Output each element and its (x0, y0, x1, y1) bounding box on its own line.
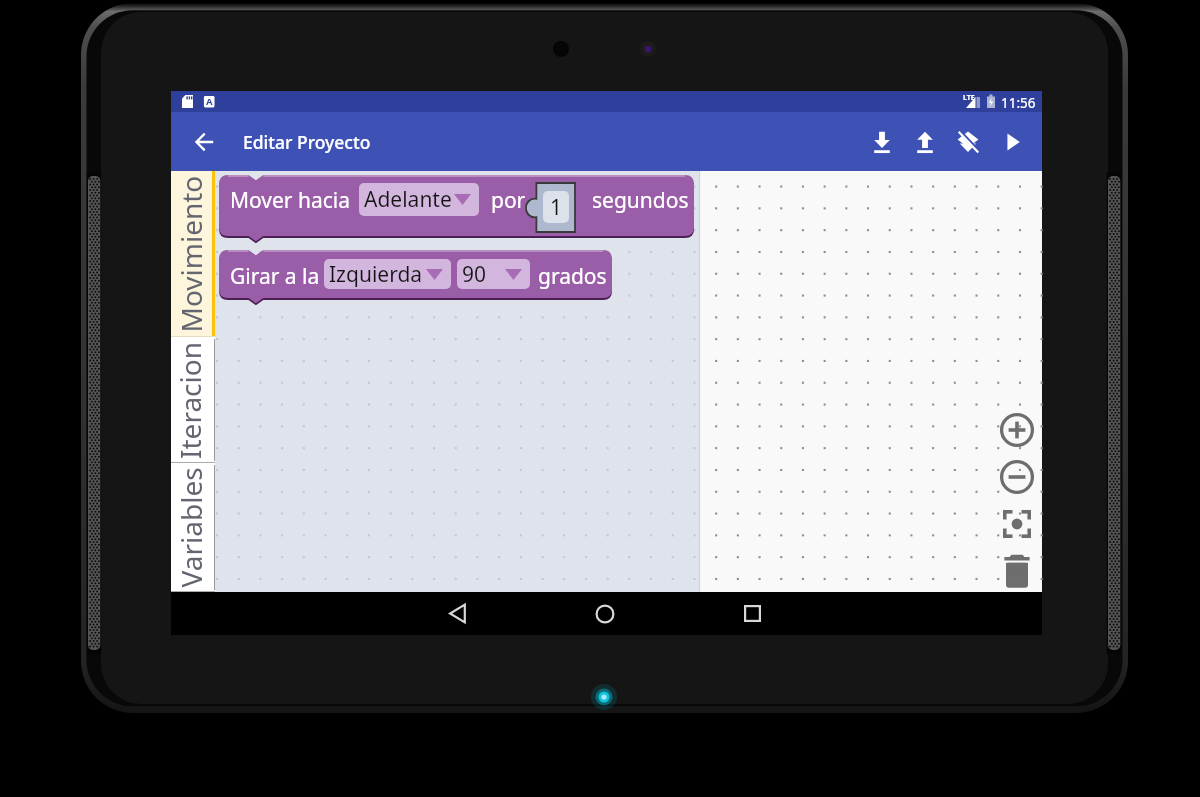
staticText: 90 (462, 260, 487, 289)
button[interactable]: Zoom out (994, 454, 1040, 500)
button[interactable]: Movimiento (171, 171, 215, 337)
staticText: Izquierda (329, 260, 423, 289)
staticText: Iteracion (171, 341, 209, 459)
staticText: Editar Proyecto (243, 130, 371, 154)
staticText: A (206, 95, 213, 108)
staticText: Girar a la (230, 262, 320, 291)
button[interactable]: 1 (543, 191, 569, 223)
button[interactable]: Back (413, 592, 503, 635)
button[interactable]: Recents (707, 592, 797, 635)
staticText: por (491, 186, 526, 215)
staticText: Mover hacia (230, 186, 351, 215)
staticText: Adelante (364, 185, 452, 214)
button[interactable]: Mover hacia (219, 175, 694, 236)
button[interactable]: Iteracion (171, 337, 215, 463)
staticText: grados (538, 262, 607, 291)
button[interactable]: Zoom in (994, 407, 1040, 453)
button[interactable]: Delete (994, 549, 1040, 595)
staticText: 11:56 (1001, 94, 1036, 112)
staticText: Variables (171, 466, 209, 587)
button[interactable]: Run (990, 112, 1034, 171)
button[interactable]: Variables (171, 463, 215, 592)
staticText: Movimiento (171, 175, 209, 332)
staticText: segundos (592, 186, 689, 215)
button[interactable]: Back (175, 112, 233, 171)
button[interactable]: Upload (903, 112, 947, 171)
staticText: 1 (550, 193, 563, 222)
button[interactable]: Toggle layers (946, 112, 990, 171)
button[interactable]: Adelante (359, 183, 479, 216)
staticText: LTE (963, 93, 975, 103)
button[interactable]: Girar a la (219, 250, 612, 298)
button[interactable]: Download (860, 112, 904, 171)
button[interactable]: 90 (457, 259, 530, 289)
button[interactable]: Izquierda (324, 259, 451, 289)
button[interactable]: Home (560, 592, 650, 635)
button[interactable]: Center view (994, 501, 1040, 547)
